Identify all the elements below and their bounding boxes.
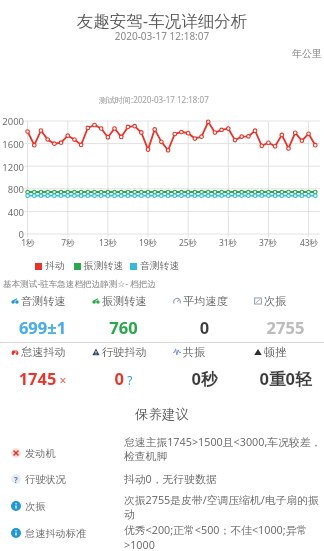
button[interactable]: 振测转速	[74, 260, 124, 272]
staticText: 0	[164, 316, 245, 338]
staticText: 发动机	[25, 447, 56, 460]
button[interactable]: 行驶状况	[11, 470, 324, 488]
staticText: 37秒	[248, 237, 288, 249]
staticText: 优秀<200;正常<500；不佳<1000;异常 >1000	[124, 522, 308, 551]
staticText: 抖动0，无行驶数据	[124, 471, 217, 486]
staticText: 0重0轻	[245, 367, 324, 390]
staticText: 次振	[25, 500, 46, 513]
staticText: 友趣安驾-车况详细分析	[0, 9, 324, 32]
staticText: 共振	[183, 345, 206, 359]
staticText: 25秒	[168, 237, 208, 249]
staticText: 顿挫	[264, 345, 287, 359]
staticText: 保养建议	[0, 406, 324, 423]
staticText: 抖动	[45, 260, 65, 272]
button[interactable]: 共振	[162, 337, 243, 381]
staticText: 平均速度	[183, 294, 228, 308]
staticText: 19秒	[128, 237, 168, 249]
staticText: 1600	[0, 138, 24, 151]
staticText: 13秒	[88, 237, 128, 249]
staticText: 7秒	[48, 237, 88, 249]
button[interactable]: 次振	[11, 497, 324, 515]
staticText: 年公里	[0, 47, 322, 60]
staticText: 基本测试-驻车急速档把边静测☆- 档把边	[3, 278, 156, 290]
staticText: 振测转速	[102, 294, 147, 308]
staticText: 次振	[264, 294, 287, 308]
button[interactable]: 顿挫	[243, 337, 324, 381]
staticText: 31秒	[208, 237, 248, 249]
other: 怠速抖动标准	[11, 528, 21, 538]
staticText: 1745 ×	[2, 367, 83, 389]
staticText: 0	[0, 228, 24, 241]
staticText: 2755	[245, 316, 324, 338]
button[interactable]: 次振	[243, 286, 324, 330]
staticText: 0 ?	[83, 367, 164, 389]
button[interactable]: 抖动	[35, 260, 65, 272]
button[interactable]: 音测转速	[0, 286, 81, 330]
button[interactable]: 平均速度	[162, 286, 243, 330]
staticText: 行驶状况	[25, 473, 66, 486]
other: 次振	[11, 501, 21, 511]
staticText: 怠速主振1745>1500且<3000,车况较差， 检查机脚	[124, 434, 322, 463]
button[interactable]: 音测转速	[130, 260, 180, 272]
staticText: 音测转速	[140, 260, 180, 272]
button[interactable]: 怠速抖动	[0, 337, 81, 381]
staticText: 2000	[0, 115, 24, 128]
button[interactable]: 怠速抖动标准	[11, 524, 324, 542]
button[interactable]: 发动机	[11, 444, 324, 462]
staticText: 800	[0, 183, 24, 196]
staticText: 1200	[0, 161, 24, 174]
other: 发动机	[11, 448, 21, 458]
staticText: 400	[0, 206, 24, 219]
staticText: 1秒	[8, 237, 48, 249]
button[interactable]: 行驶抖动	[81, 337, 162, 381]
staticText: 次振2755是皮带/空调压缩机/电子扇的振 动	[124, 492, 319, 521]
staticText: 怠速抖动	[21, 345, 66, 359]
button[interactable]: 振测转速	[81, 286, 162, 330]
staticText: 0秒	[164, 367, 245, 390]
other: 行驶状况	[11, 474, 21, 484]
staticText: 43秒	[289, 237, 324, 249]
staticText: 行驶抖动	[102, 345, 147, 359]
staticText: 振测转速	[84, 260, 124, 272]
staticText: 测试时间:2020-03-17 12:18:07	[99, 94, 209, 105]
staticText: 699±1	[2, 316, 83, 338]
staticText: 760	[83, 316, 164, 338]
staticText: 音测转速	[21, 294, 66, 308]
staticText: ?	[14, 474, 18, 484]
staticText: 2020-03-17 12:18:07	[0, 29, 324, 43]
staticText: 怠速抖动标准	[25, 527, 87, 540]
